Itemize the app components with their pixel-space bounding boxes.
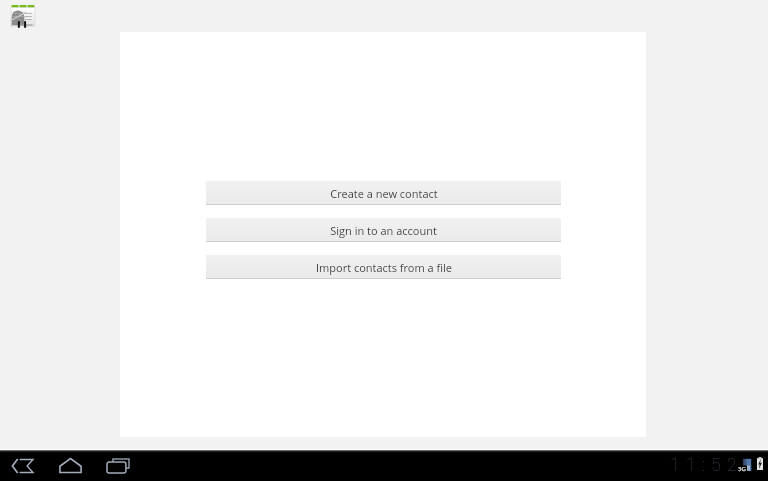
staticText: Import contacts from a file	[316, 260, 452, 275]
button[interactable]: Contacts	[11, 5, 35, 28]
staticText: 11:52	[670, 454, 743, 475]
button[interactable]: Recent apps	[101, 450, 135, 481]
staticText: Create a new contact	[330, 186, 438, 201]
button[interactable]: Import contacts from a file	[206, 255, 561, 279]
button[interactable]: Home	[53, 450, 87, 481]
button[interactable]: Sign in to an account	[206, 218, 561, 242]
staticText: 3G	[738, 465, 746, 473]
staticText: Sign in to an account	[330, 223, 437, 238]
button[interactable]: Back	[5, 450, 39, 481]
button[interactable]: Create a new contact	[206, 181, 561, 205]
